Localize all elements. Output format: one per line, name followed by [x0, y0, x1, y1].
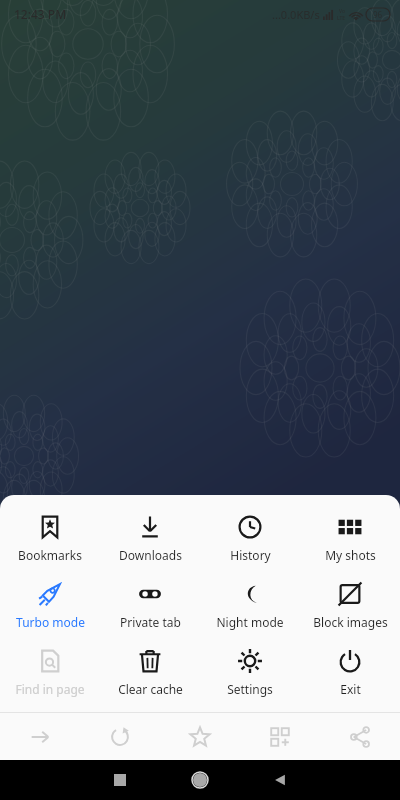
button[interactable]: Clear cache [100, 641, 200, 708]
staticText: 96 [373, 9, 383, 20]
button[interactable]: Flipkart [308, 712, 356, 778]
button[interactable]: Find in page [0, 641, 100, 708]
button[interactable]: Settings [200, 641, 300, 708]
button[interactable]: Bookmarks [0, 507, 100, 574]
staticText: Clear cache [118, 681, 183, 697]
staticText: My shots [325, 547, 376, 563]
button[interactable]: Share [320, 713, 400, 760]
staticText: Downloads [119, 547, 182, 563]
button[interactable]: Tabs [240, 713, 320, 760]
staticText: 12:43 PM [14, 6, 67, 22]
staticText: Vo [339, 8, 345, 15]
staticText: LTE [337, 15, 346, 22]
button[interactable]: Recents [80, 760, 160, 800]
staticText: Find in page [15, 681, 85, 697]
button[interactable]: Reload [80, 713, 160, 760]
button[interactable]: Facebook [132, 712, 180, 778]
staticText: History [230, 547, 271, 563]
button[interactable]: Exit [300, 641, 400, 708]
staticText: Block images [313, 614, 388, 630]
button[interactable]: Block images [300, 574, 400, 641]
button[interactable]: History [200, 507, 300, 574]
staticText: Exit [340, 681, 361, 697]
button[interactable]: YouTube [44, 712, 92, 778]
button[interactable]: Back [240, 760, 320, 800]
button[interactable]: Turbo mode [0, 574, 100, 641]
staticText: Night mode [216, 614, 284, 630]
staticText: ...0.0KB/s [272, 7, 320, 22]
button[interactable]: Downloads [100, 507, 200, 574]
staticText: Turbo mode [16, 614, 85, 630]
staticText: Search or enter address [122, 652, 279, 671]
staticText: Settings [227, 681, 273, 697]
staticText: Bookmarks [18, 547, 82, 563]
button[interactable]: Forward [0, 713, 80, 760]
button[interactable]: My shots [300, 507, 400, 574]
button[interactable]: Night mode [200, 574, 300, 641]
button[interactable]: Private tab [100, 574, 200, 641]
button[interactable]: Home [160, 760, 240, 800]
button[interactable]: Bookmark [160, 713, 240, 760]
staticText: Private tab [120, 614, 181, 630]
button[interactable]: Search or enter address [44, 640, 356, 682]
button[interactable]: Wikipedia [220, 712, 268, 778]
